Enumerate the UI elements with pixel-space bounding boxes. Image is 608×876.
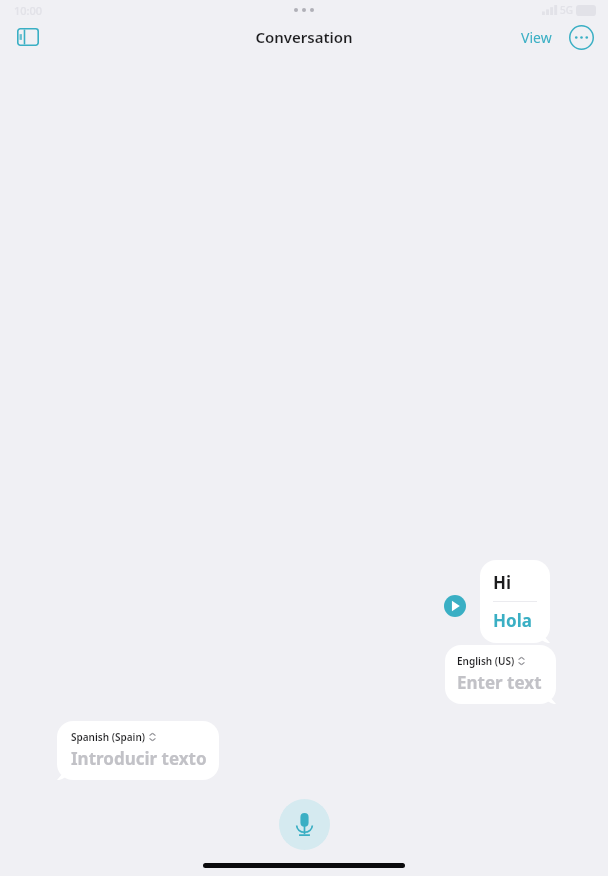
staticText: 5G bbox=[560, 3, 573, 17]
staticText: Spanish (Spain) bbox=[71, 730, 146, 744]
staticText: English (US) bbox=[457, 654, 515, 668]
staticText: 10:00 bbox=[14, 3, 43, 18]
button[interactable]: Record voice bbox=[279, 799, 330, 850]
button[interactable]: Play translation bbox=[444, 595, 466, 617]
button[interactable]: English (US) bbox=[445, 645, 556, 704]
button[interactable]: More options bbox=[566, 22, 596, 52]
staticText: Hi bbox=[493, 571, 512, 594]
staticText: View bbox=[521, 28, 552, 47]
button[interactable]: View bbox=[517, 24, 556, 51]
staticText: Hola bbox=[493, 609, 532, 632]
button[interactable]: Spanish (Spain) bbox=[57, 721, 219, 780]
button[interactable]: Toggle sidebar bbox=[8, 17, 48, 57]
staticText: Conversation bbox=[255, 27, 353, 47]
staticText: Introducir texto bbox=[71, 747, 207, 770]
button[interactable]: Hi bbox=[480, 560, 550, 643]
staticText: Enter text bbox=[457, 671, 542, 694]
